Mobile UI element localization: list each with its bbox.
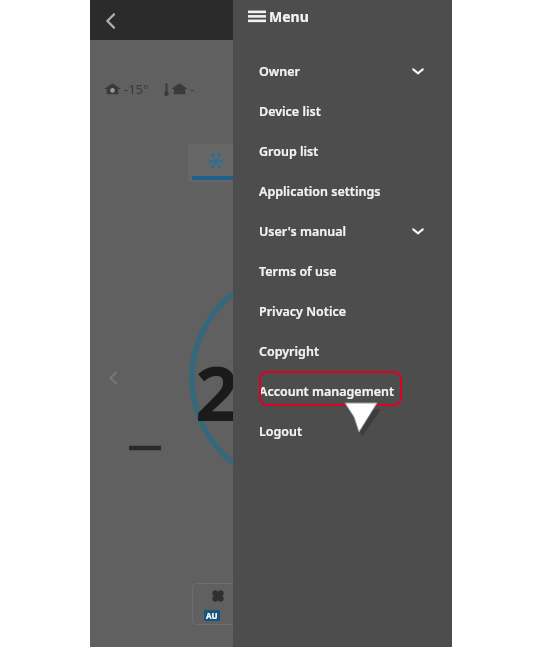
staticText: Copyright <box>259 343 319 360</box>
staticText: Terms of use <box>259 263 337 280</box>
button[interactable]: Back <box>96 6 126 36</box>
staticText: 2 <box>195 340 239 444</box>
button[interactable]: Application settings <box>259 174 425 208</box>
button[interactable]: Group list <box>259 134 425 168</box>
button[interactable]: Privacy Notice <box>259 294 425 328</box>
staticText: Group list <box>259 143 319 160</box>
staticText: - <box>190 80 195 98</box>
button[interactable]: User's manual <box>259 214 425 248</box>
staticText: AU <box>206 610 218 621</box>
button[interactable]: Terms of use <box>259 254 425 288</box>
staticText: Account management <box>259 383 395 400</box>
staticText: Device list <box>259 103 321 120</box>
button[interactable]: Fan speed auto <box>192 583 244 625</box>
button[interactable]: Previous <box>100 365 126 391</box>
staticText: -15° <box>124 80 149 98</box>
staticText: Application settings <box>259 183 381 200</box>
staticText: Logout <box>259 423 303 440</box>
staticText: Owner <box>259 63 300 80</box>
button[interactable]: Cool mode <box>188 144 244 182</box>
button[interactable]: Decrease temperature <box>129 440 161 456</box>
button[interactable]: Device list <box>259 94 425 128</box>
button[interactable]: Logout <box>259 414 425 448</box>
button[interactable]: Menu <box>248 7 309 26</box>
button[interactable]: Account management <box>259 374 425 408</box>
button[interactable]: Owner <box>259 54 425 88</box>
button[interactable]: Copyright <box>259 334 425 368</box>
staticText: Menu <box>269 7 309 26</box>
staticText: User's manual <box>259 223 347 240</box>
staticText: Privacy Notice <box>259 303 347 320</box>
